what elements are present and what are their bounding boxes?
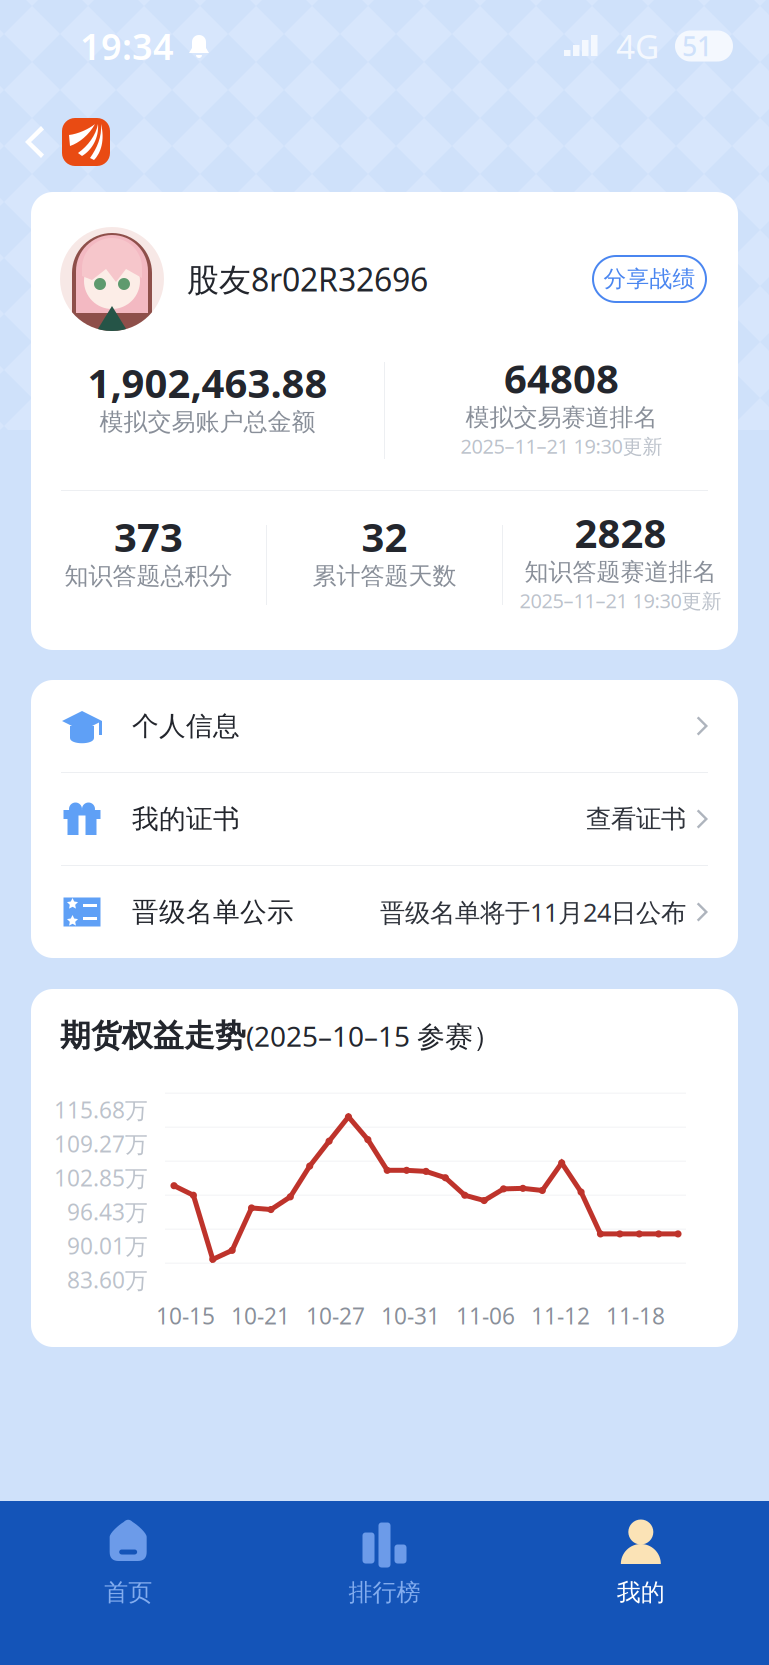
staticText: 83.60万 — [67, 1265, 148, 1295]
staticText: 10-21 — [231, 1301, 290, 1331]
staticText: 19:34 — [80, 22, 174, 70]
staticText: 10-27 — [306, 1301, 365, 1331]
staticText: 64808 — [504, 351, 619, 404]
staticText: 知识答题总积分 — [64, 561, 232, 591]
button[interactable]: 分享战绩 — [593, 256, 706, 302]
button[interactable]: Back — [16, 110, 54, 174]
staticText: 51 — [682, 28, 712, 64]
staticText: 股友8r02R32696 — [187, 258, 428, 300]
staticText: 我的证书 — [132, 803, 240, 835]
staticText: 4G — [616, 24, 659, 68]
staticText: 11-06 — [456, 1301, 515, 1331]
staticText: 96.43万 — [67, 1197, 148, 1227]
staticText: 11-18 — [606, 1301, 665, 1331]
staticText: 分享战绩 — [603, 265, 695, 293]
staticText: 期货权益走势 — [60, 1017, 246, 1055]
staticText: 个人信息 — [132, 710, 240, 742]
button[interactable]: 个人信息 — [31, 680, 738, 772]
staticText: 知识答题赛道排名 — [524, 557, 716, 587]
staticText: 1,902,463.88 — [87, 356, 327, 409]
staticText: 我的 — [617, 1578, 665, 1607]
staticText: 32 — [361, 510, 407, 563]
staticText: 晋级名单公示 — [132, 896, 294, 928]
staticText: 模拟交易赛道排名 — [465, 403, 657, 432]
button[interactable]: 我的证书 — [31, 773, 738, 865]
staticText: 10-31 — [381, 1301, 440, 1331]
staticText: 晋级名单将于11月24日公布 — [380, 895, 686, 929]
staticText: 排行榜 — [348, 1578, 420, 1607]
staticText: 查看证书 — [586, 803, 686, 834]
staticText: 10-15 — [156, 1301, 215, 1331]
staticText: 2828 — [574, 506, 666, 559]
staticText: 首页 — [104, 1578, 152, 1607]
staticText: 90.01万 — [67, 1231, 148, 1261]
staticText: 109.27万 — [54, 1129, 148, 1159]
staticText: 102.85万 — [54, 1163, 148, 1193]
staticText: 2025–11–21 19:30更新 — [519, 587, 721, 614]
button[interactable]: 排行榜 — [256, 1501, 513, 1665]
staticText: 373 — [114, 510, 183, 563]
staticText: 模拟交易账户总金额 — [99, 407, 315, 437]
button[interactable]: 晋级名单公示 — [31, 866, 738, 958]
staticText: 累计答题天数 — [312, 561, 456, 591]
staticText: 11-12 — [531, 1301, 590, 1331]
button[interactable]: 我的 — [513, 1501, 769, 1665]
button[interactable]: 首页 — [0, 1501, 256, 1665]
staticText: (2025–10–15 参赛） — [246, 1017, 501, 1054]
staticText: 115.68万 — [54, 1095, 148, 1125]
staticText: 2025–11–21 19:30更新 — [460, 433, 662, 459]
